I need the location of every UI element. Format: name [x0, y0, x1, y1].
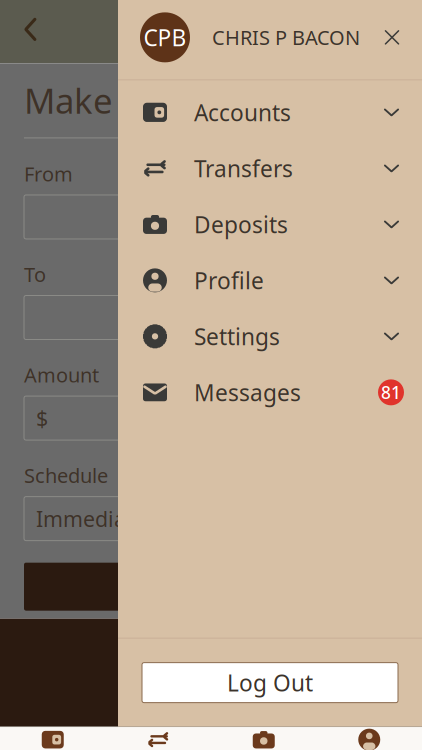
button[interactable]: Transfers [118, 140, 422, 196]
staticText: Amount [24, 361, 99, 388]
staticText: Messages [194, 377, 301, 407]
button[interactable]: Transfers [105, 727, 211, 750]
staticText: Settings [194, 321, 280, 351]
staticText: Profile [194, 265, 264, 295]
staticText: $ [36, 404, 48, 432]
staticText: Make A Transfer [24, 77, 288, 123]
staticText: Log Out [227, 668, 313, 698]
button[interactable]: Log Out [142, 663, 398, 703]
staticText: To [24, 261, 46, 288]
button[interactable]: Settings [118, 308, 422, 364]
button[interactable]: Messages [118, 364, 422, 420]
staticText: Accounts [194, 97, 291, 127]
button[interactable]: Deposits [118, 196, 422, 252]
staticText: Member FDIC [154, 690, 268, 713]
staticText: Schedule [24, 462, 108, 489]
button[interactable]: Profile [316, 727, 422, 750]
staticText: CHRIS P BACON [212, 24, 360, 51]
button[interactable]: Accounts [118, 84, 422, 140]
button[interactable]: Close menu [370, 15, 414, 59]
staticText: Deposits [194, 209, 288, 239]
staticText: Immediate (One Time) [36, 504, 262, 533]
staticText: 81 [381, 381, 401, 404]
staticText: CPB [143, 22, 186, 52]
button[interactable]: Profile [118, 252, 422, 308]
staticText: From [24, 160, 73, 187]
button[interactable]: Accounts [0, 727, 105, 750]
button[interactable]: Deposits [211, 727, 316, 750]
staticText: Transfers [194, 153, 293, 183]
